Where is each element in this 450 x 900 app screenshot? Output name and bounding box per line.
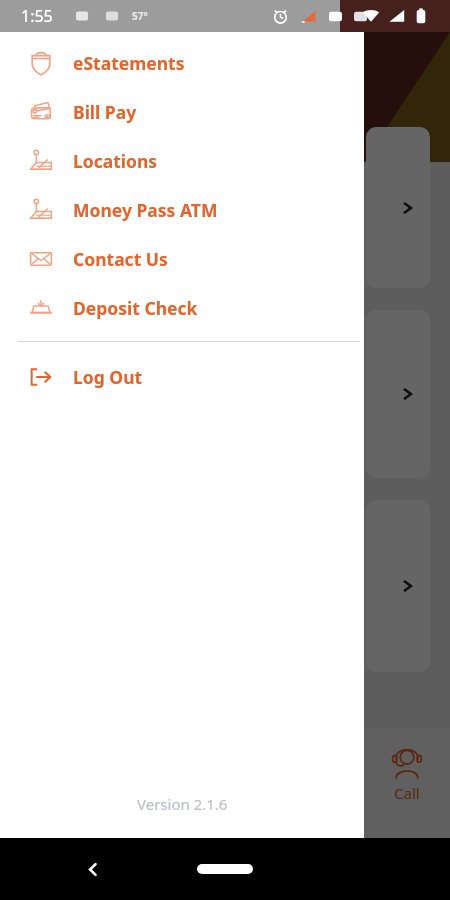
button[interactable]: Log Out — [0, 352, 364, 401]
staticText: Version 2.1.6 — [137, 794, 228, 814]
staticText: Bill Pay — [73, 100, 137, 124]
button[interactable]: Contact Us — [0, 234, 364, 283]
button[interactable]: Money Pass ATM — [0, 185, 364, 234]
staticText: Deposit Check — [73, 296, 198, 320]
button[interactable] — [366, 500, 430, 672]
staticText: 1:55 — [21, 5, 53, 27]
staticText: Money Pass ATM — [73, 198, 218, 222]
button[interactable]: Call — [390, 746, 424, 803]
staticText: Call — [394, 783, 420, 803]
button[interactable] — [366, 310, 430, 478]
staticText: 57° — [132, 9, 148, 23]
staticText: Log Out — [73, 365, 143, 389]
staticText: Locations — [73, 149, 158, 173]
button[interactable]: eStatements — [0, 38, 364, 87]
staticText: Contact Us — [73, 247, 168, 271]
button[interactable]: Locations — [0, 136, 364, 185]
button[interactable]: Bill Pay — [0, 87, 364, 136]
staticText: eStatements — [73, 51, 185, 75]
button[interactable] — [366, 127, 430, 288]
button[interactable]: Deposit Check — [0, 283, 364, 332]
button[interactable]: Back — [78, 854, 108, 884]
button[interactable]: Home — [197, 864, 253, 874]
